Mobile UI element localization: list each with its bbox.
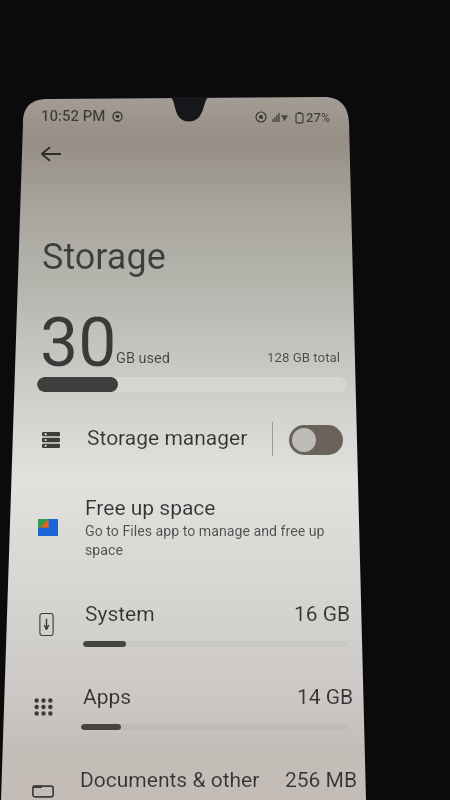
staticText: 27%	[306, 110, 331, 125]
staticText: Documents & other	[80, 768, 260, 793]
staticText: 128 GB total	[267, 350, 340, 366]
button[interactable]: Storage manager toggle	[289, 425, 343, 455]
staticText: 14 GB	[297, 685, 354, 710]
staticText: Storage manager	[87, 426, 248, 451]
staticText: Storage	[42, 236, 166, 278]
staticText: 10:52 PM	[41, 107, 106, 125]
staticText: 16 GB	[294, 602, 351, 627]
staticText: 30	[40, 303, 117, 383]
staticText: Apps	[83, 685, 132, 710]
button[interactable]: Documents & other	[10, 759, 362, 800]
button[interactable]: Back	[28, 131, 74, 177]
staticText: Free up space	[85, 496, 216, 521]
staticText: 256 MB	[285, 768, 358, 793]
button[interactable]: System	[10, 593, 362, 651]
staticText: System	[85, 602, 155, 627]
button[interactable]: Free up space	[14, 490, 354, 572]
button[interactable]: Storage manager	[18, 414, 268, 466]
staticText: GB used	[116, 350, 170, 367]
staticText: Go to Files app to manage and free up sp…	[85, 523, 325, 559]
button[interactable]: Apps	[10, 676, 362, 734]
